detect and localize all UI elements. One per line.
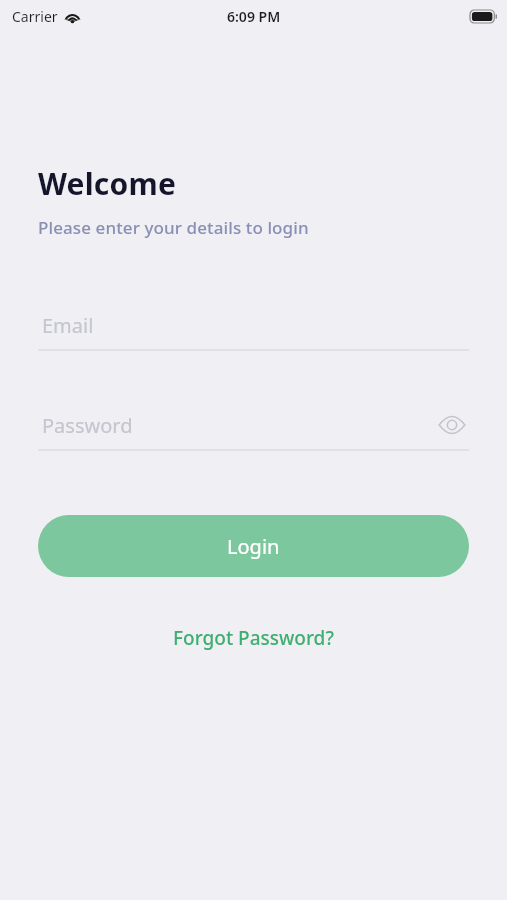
staticText: Password [42, 412, 133, 439]
button[interactable]: Show password [435, 408, 469, 442]
staticText: Email [42, 312, 94, 339]
staticText: 6:09 PM [227, 7, 281, 26]
staticText: Welcome [38, 163, 177, 204]
button[interactable]: Forgot Password? [165, 621, 342, 655]
staticText: Please enter your details to login [38, 216, 309, 239]
staticText: Carrier [12, 7, 58, 26]
staticText: Forgot Password? [173, 625, 334, 651]
button[interactable]: Password [38, 405, 469, 445]
button[interactable]: Login [38, 515, 469, 577]
button[interactable]: Email [38, 305, 469, 345]
staticText: Login [227, 533, 280, 560]
